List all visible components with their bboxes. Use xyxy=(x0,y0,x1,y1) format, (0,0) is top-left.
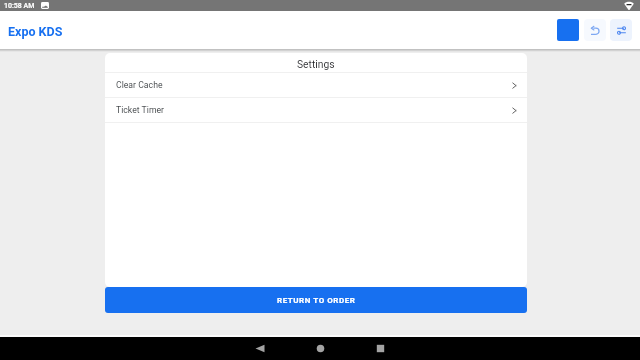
staticText: RETURN TO ORDER xyxy=(277,296,356,305)
staticText: Clear Cache xyxy=(116,80,163,90)
staticText: 10:58 AM xyxy=(4,2,35,10)
button[interactable]: Settings xyxy=(610,19,632,41)
button[interactable]: Station colour xyxy=(557,19,579,41)
button[interactable]: Clear Cache xyxy=(105,73,527,97)
button[interactable]: Undo xyxy=(584,19,606,41)
staticText: Expo KDS xyxy=(8,24,63,39)
button[interactable]: RETURN TO ORDER xyxy=(105,287,527,313)
button[interactable]: Recent apps xyxy=(358,337,402,360)
button[interactable]: Ticket Timer xyxy=(105,98,527,122)
button[interactable]: Back xyxy=(238,337,282,360)
staticText: Settings xyxy=(297,58,335,70)
button[interactable]: Home xyxy=(298,337,342,360)
staticText: Ticket Timer xyxy=(116,105,165,115)
